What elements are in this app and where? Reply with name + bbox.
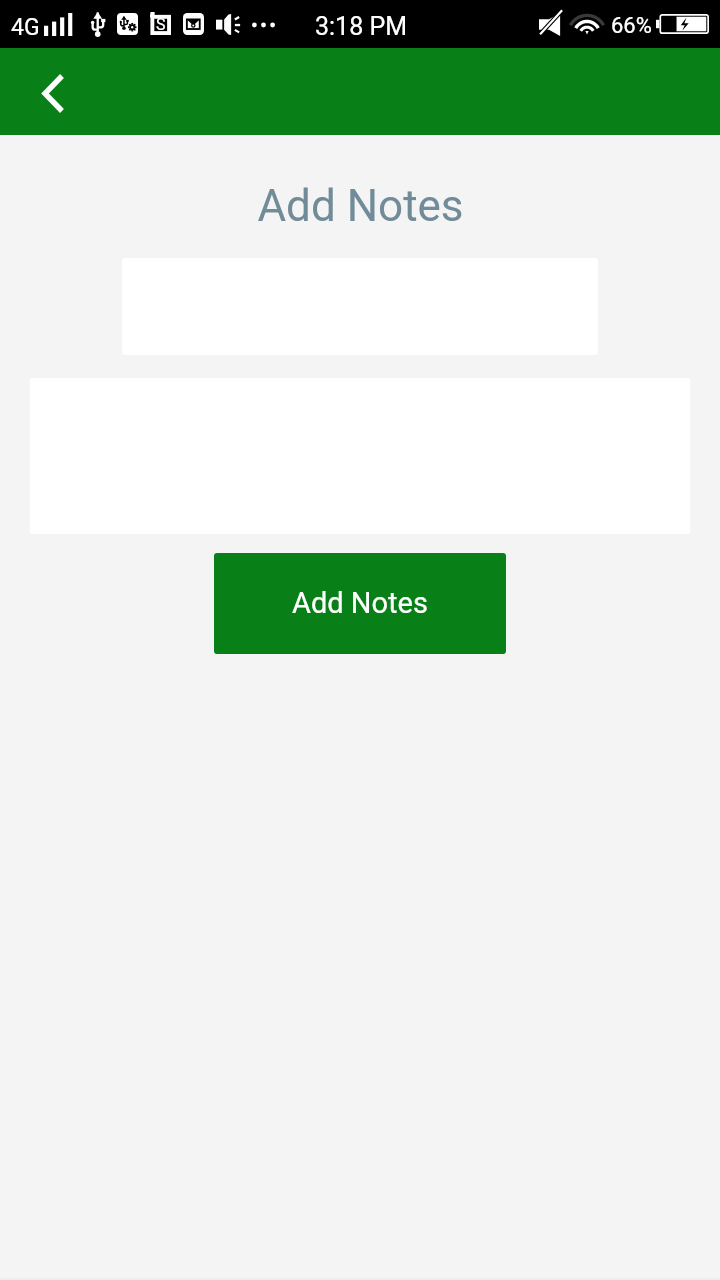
staticText: Add Notes	[257, 180, 464, 232]
button[interactable]: Back	[12, 48, 88, 135]
staticText: 3:18 PM	[315, 12, 408, 41]
button[interactable]: Add Notes	[214, 553, 506, 654]
staticText: S	[156, 15, 166, 34]
staticText: Add Notes	[292, 586, 428, 620]
staticText: 66%	[611, 13, 652, 39]
staticText: 4G	[11, 14, 40, 41]
